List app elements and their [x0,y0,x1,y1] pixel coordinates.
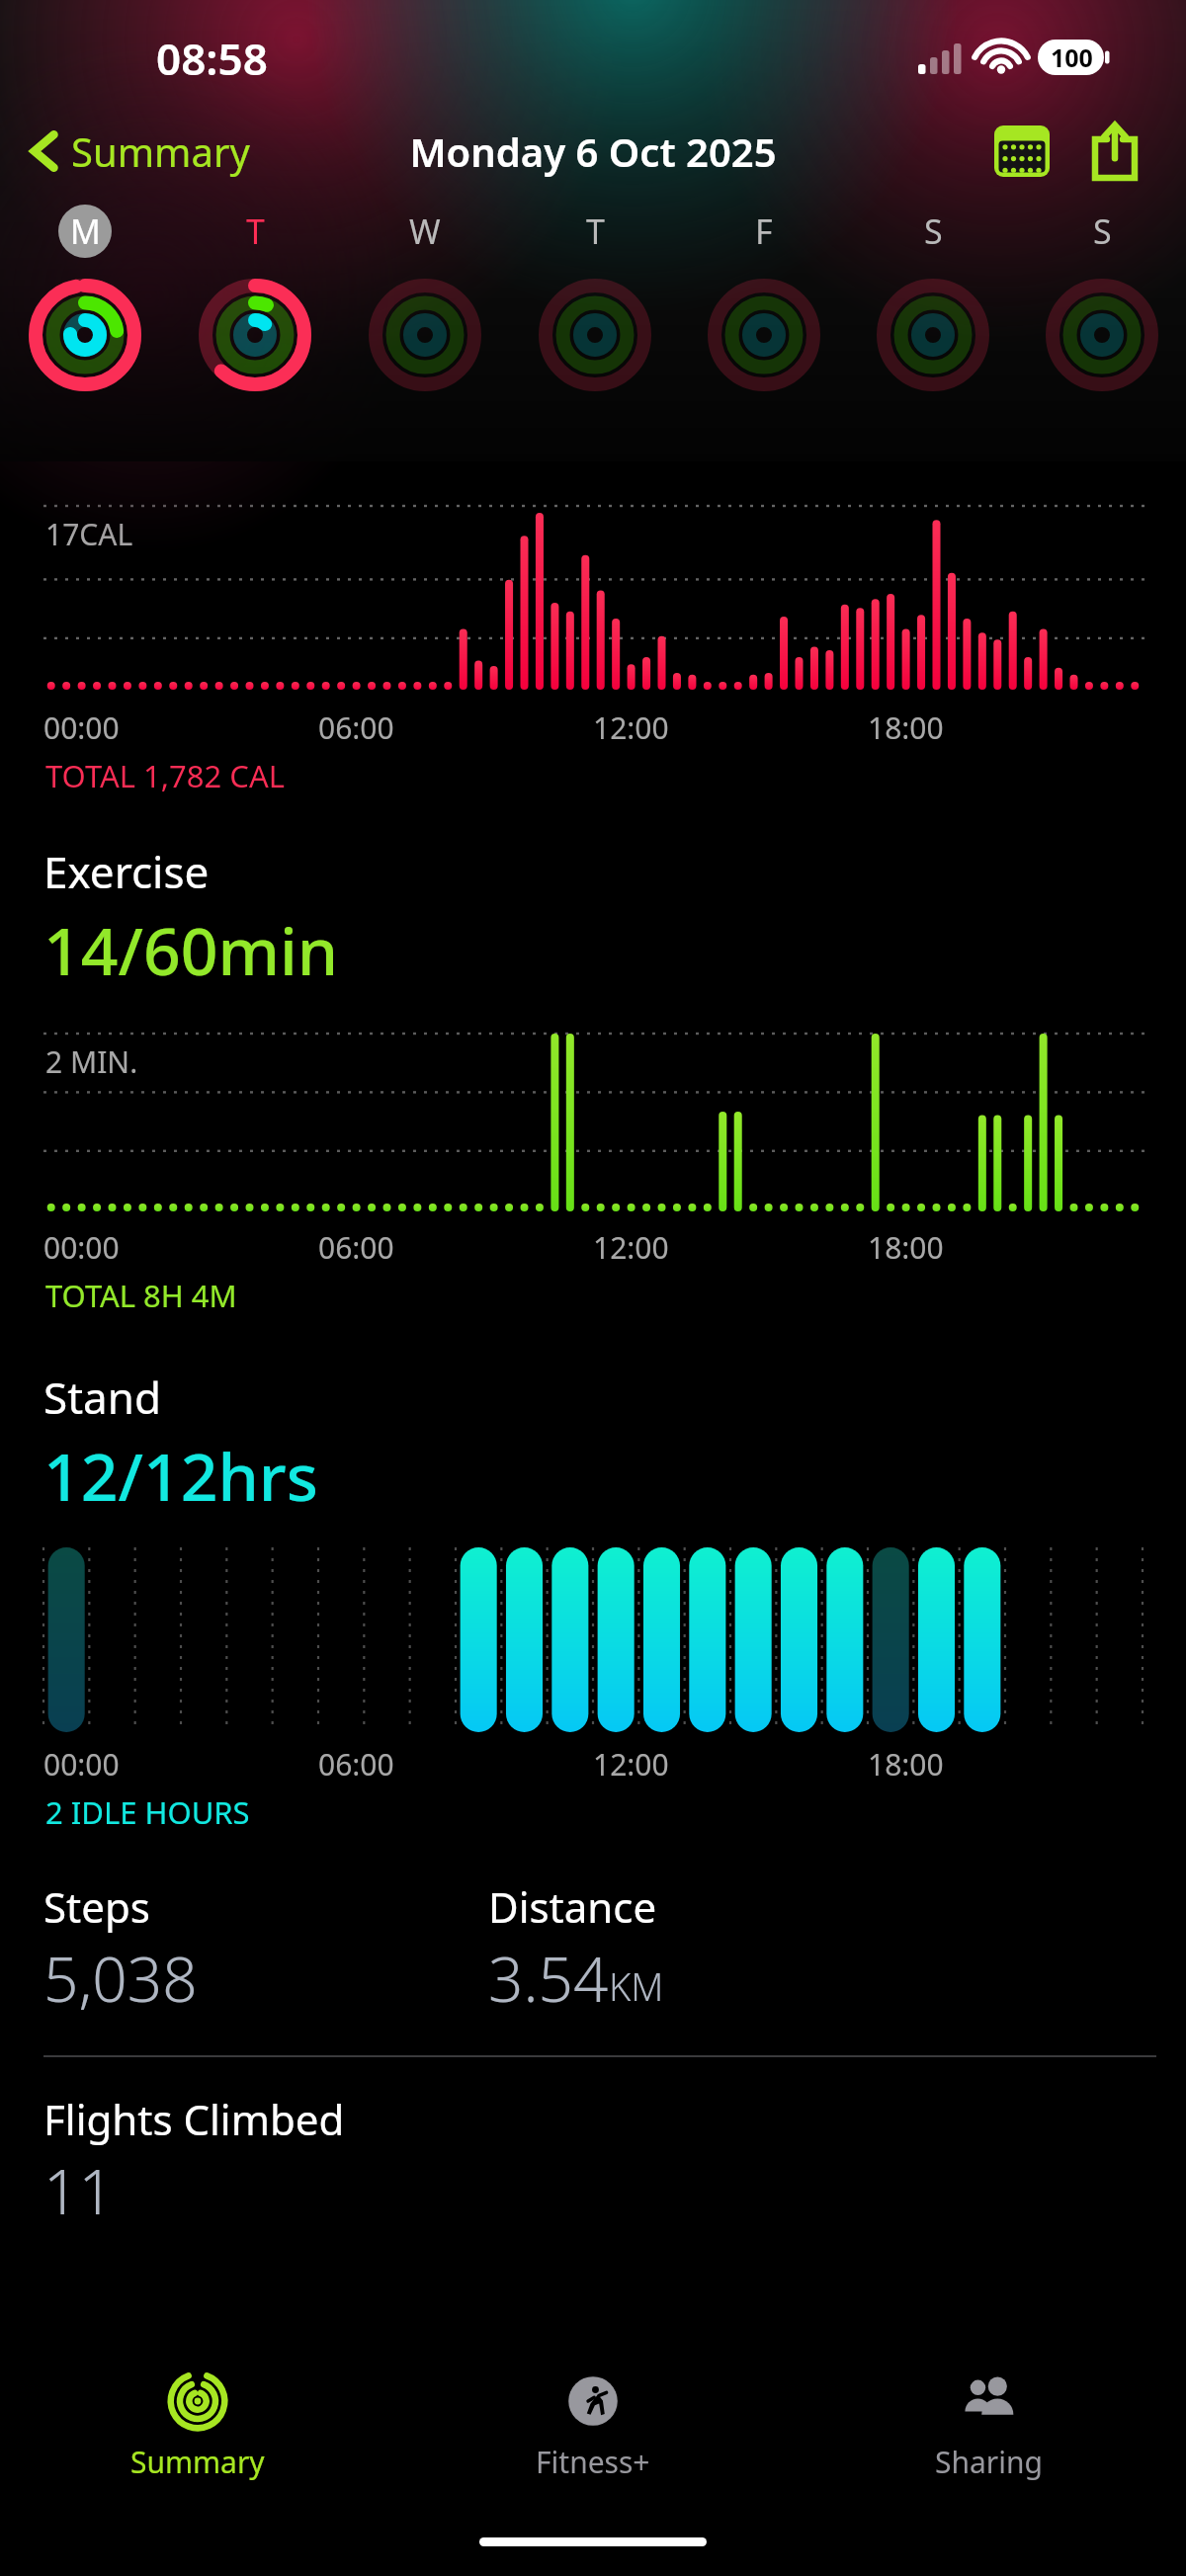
staticText: 00:00 [43,707,120,748]
button[interactable]: Sharing [791,2349,1186,2507]
staticText: 18:00 [868,1744,944,1785]
staticText: 12/12hrs [43,1431,318,1520]
staticText: 00:00 [43,1744,120,1785]
button[interactable]: Steps [43,1878,488,2020]
button[interactable]: Distance [488,1878,1186,2020]
button[interactable]: Calendar [986,116,1058,187]
staticText: 3.54 [488,1937,609,2020]
staticText: 06:00 [318,1744,394,1785]
staticText: TOTAL 8H 4M [45,1275,237,1316]
staticText: 11 [43,2149,114,2232]
staticText: 100 [1051,41,1093,74]
staticText: T [246,208,265,254]
staticText: Distance [488,1878,657,1935]
staticText: Flights Climbed [43,2091,345,2147]
staticText: 14/60min [43,905,339,994]
staticText: 08:58 [156,29,268,88]
button[interactable]: Summary [28,125,250,178]
staticText: 18:00 [868,1227,944,1268]
staticText: Steps [43,1878,150,1935]
button[interactable]: W [340,204,510,431]
button[interactable]: Share [1079,116,1150,187]
staticText: Sharing [935,2442,1043,2482]
staticText: Summary [71,125,250,178]
staticText: F [755,208,773,254]
staticText: 5,038 [43,1937,198,2020]
staticText: TOTAL 1,782 CAL [45,755,286,796]
button[interactable]: T [510,204,679,431]
staticText: S [924,208,943,254]
staticText: 06:00 [318,1227,394,1268]
staticText: 00:00 [43,1227,120,1268]
staticText: Summary [130,2442,265,2482]
staticText: Fitness+ [536,2442,650,2482]
staticText: 18:00 [868,707,944,748]
staticText: 12:00 [593,707,669,748]
button[interactable]: S [848,204,1017,431]
staticText: 2 IDLE HOURS [45,1791,250,1833]
staticText: Exercise [43,842,210,901]
button[interactable]: T [170,204,340,431]
staticText: Monday 6 Oct 2025 [409,125,777,178]
button[interactable]: Fitness+ [395,2349,791,2507]
button[interactable]: M [0,204,170,431]
staticText: M [70,208,101,254]
staticText: KM [609,1960,664,2012]
staticText: 06:00 [318,707,394,748]
staticText: S [1093,208,1112,254]
staticText: 12:00 [593,1227,669,1268]
staticText: 12:00 [593,1744,669,1785]
staticText: Stand [43,1368,161,1427]
button[interactable]: Summary [0,2349,395,2507]
button[interactable]: F [679,204,848,431]
staticText: 2 MIN. [45,1041,138,1082]
staticText: W [409,208,441,254]
staticText: T [586,208,605,254]
button[interactable]: S [1017,204,1186,431]
staticText: 17CAL [45,514,133,554]
button[interactable]: Flights Climbed [43,2091,345,2232]
